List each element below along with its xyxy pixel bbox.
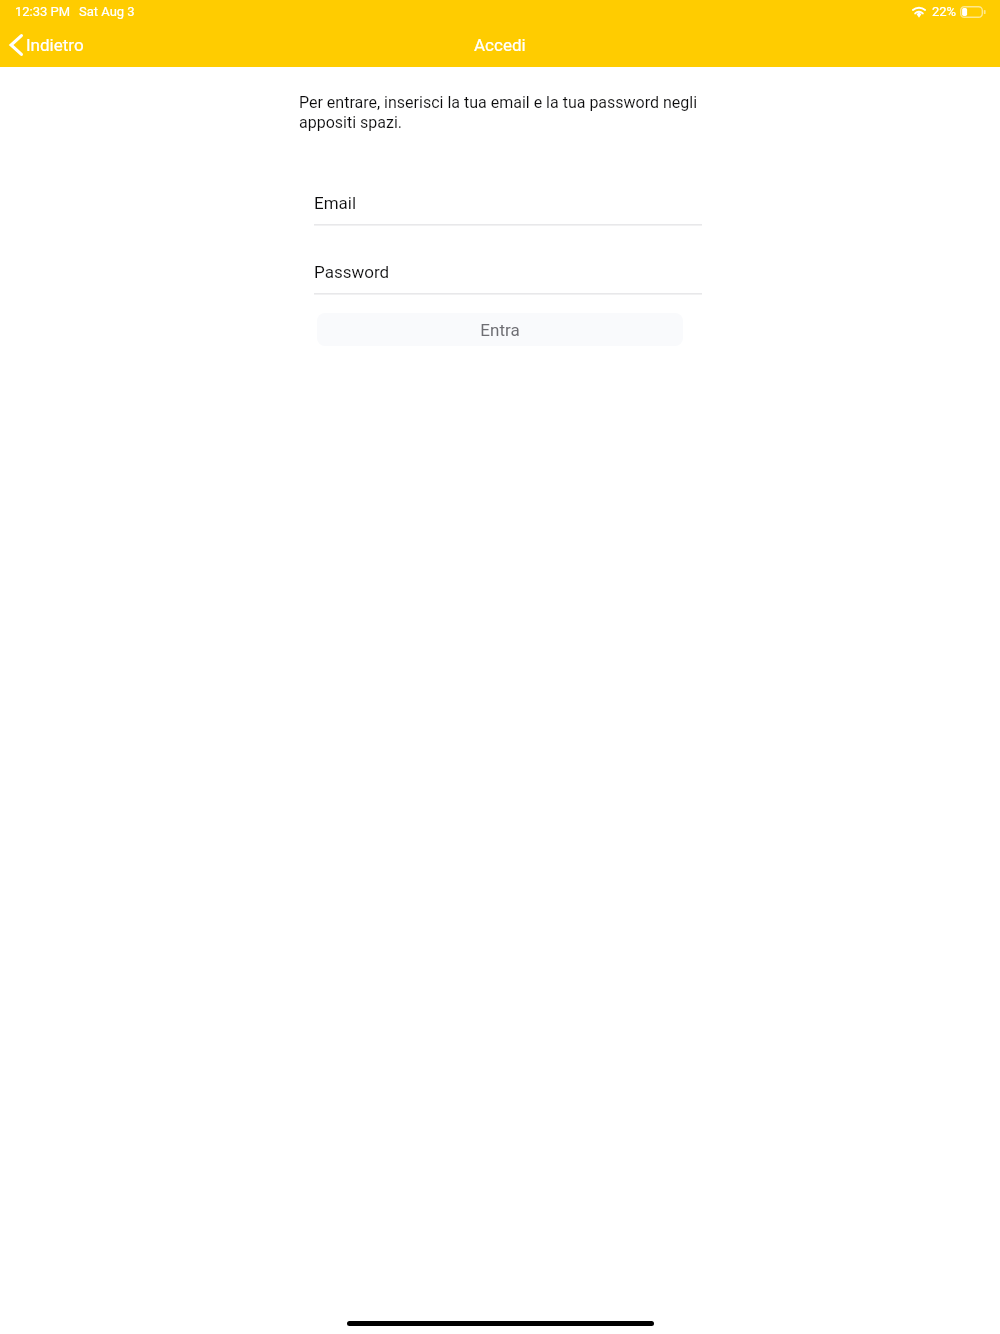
staticText: Per entrare, inserisci la tua email e la… — [299, 93, 699, 132]
staticText: Email — [314, 193, 357, 213]
staticText: Indietro — [26, 35, 84, 55]
button[interactable]: Email — [314, 193, 702, 226]
staticText: Entra — [480, 320, 520, 340]
button[interactable]: Indietro — [0, 28, 96, 62]
staticText: 22% — [932, 4, 957, 19]
staticText: Accedi — [474, 35, 526, 55]
staticText: 12:33 PM — [15, 4, 71, 19]
staticText: Sat Aug 3 — [79, 4, 135, 19]
other: Battery 22 percent — [960, 6, 986, 18]
staticText: Password — [314, 262, 390, 282]
button[interactable]: Password — [314, 262, 702, 295]
other: Wi-Fi — [912, 6, 926, 18]
button[interactable]: Entra — [317, 313, 683, 346]
